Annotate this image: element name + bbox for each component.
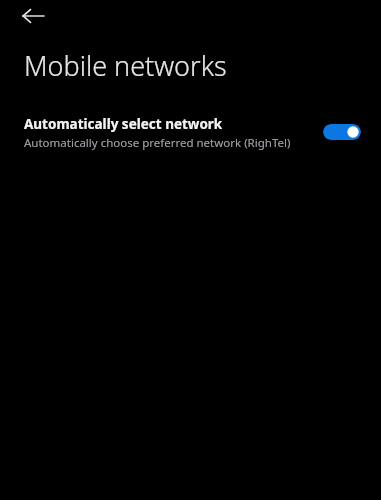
staticText: Automatically choose preferred network (… bbox=[24, 135, 291, 151]
button[interactable]: Automatically select network bbox=[0, 113, 381, 161]
button[interactable]: Automatically select network toggle bbox=[323, 124, 361, 140]
staticText: Mobile networks bbox=[24, 47, 227, 84]
staticText: Automatically select network bbox=[24, 115, 223, 133]
button[interactable]: Back bbox=[13, 0, 53, 32]
